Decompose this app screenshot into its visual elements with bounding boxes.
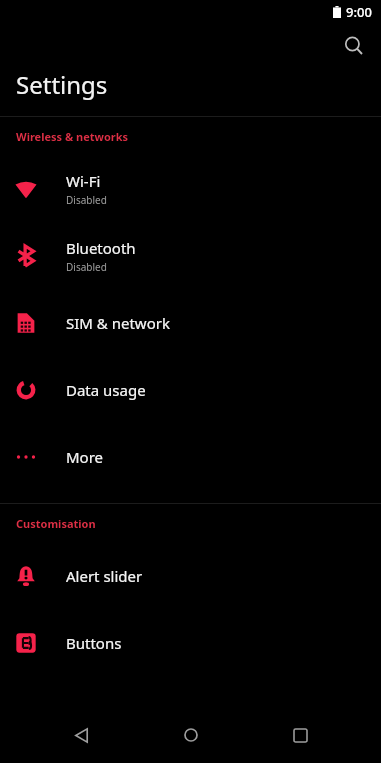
staticText: Wi-Fi [66, 171, 101, 191]
button[interactable]: SIM & network [0, 289, 381, 356]
staticText: Alert slider [66, 566, 143, 586]
staticText: Customisation [16, 516, 96, 531]
staticText: Wireless & networks [16, 129, 129, 144]
button[interactable]: Bluetooth [0, 222, 381, 289]
staticText: Buttons [66, 633, 122, 653]
staticText: More [66, 447, 104, 467]
staticText: 9:00 [346, 3, 372, 21]
button[interactable]: Search [334, 26, 374, 66]
button[interactable]: Data usage [0, 356, 381, 423]
staticText: Data usage [66, 380, 146, 400]
staticText: Settings [16, 68, 108, 101]
button[interactable]: Back [53, 707, 109, 763]
staticText: SIM & network [66, 313, 170, 333]
staticText: Bluetooth [66, 238, 136, 258]
button[interactable]: Wi-Fi [0, 155, 381, 222]
button[interactable]: Home [163, 707, 219, 763]
staticText: Disabled [66, 193, 107, 207]
button[interactable]: Alert slider [0, 542, 381, 609]
staticText: Disabled [66, 260, 107, 274]
button[interactable]: Recents [272, 707, 328, 763]
button[interactable]: Buttons [0, 609, 381, 676]
button[interactable]: More [0, 423, 381, 490]
